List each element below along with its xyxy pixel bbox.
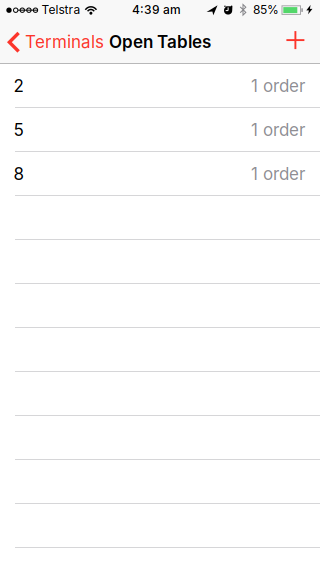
button[interactable]: Terminals (0, 20, 104, 63)
staticText: 1 order (251, 119, 305, 140)
staticText: 5 (13, 119, 23, 140)
button[interactable]: 5 (0, 108, 320, 152)
button[interactable]: 2 (0, 64, 320, 108)
staticText: Open Tables (109, 31, 211, 52)
staticText: 4:39 am (132, 2, 181, 17)
staticText: 1 order (251, 163, 305, 184)
staticText: Terminals (25, 31, 104, 52)
staticText: 1 order (251, 75, 305, 96)
staticText: 85% (253, 2, 279, 17)
staticText: 8 (13, 163, 24, 184)
button[interactable]: Add (276, 20, 320, 63)
staticText: 2 (13, 75, 23, 96)
staticText: Telstra (41, 2, 80, 17)
button[interactable]: 8 (0, 152, 320, 196)
